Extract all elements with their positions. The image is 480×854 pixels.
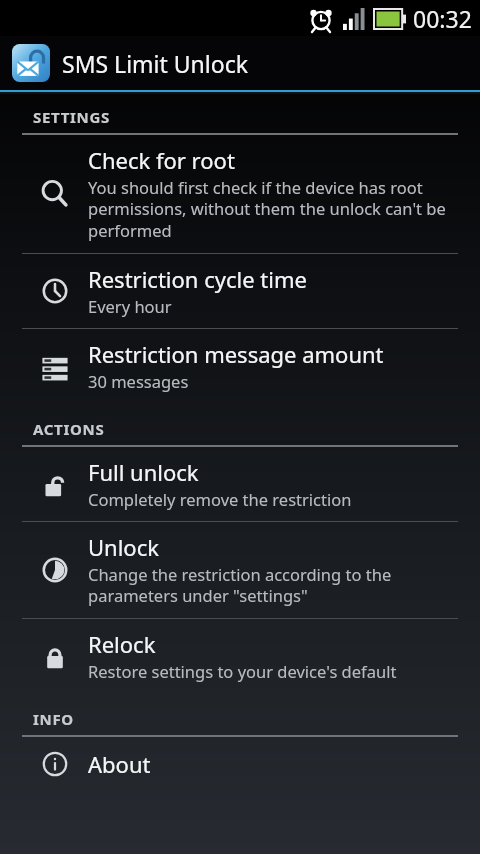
button[interactable]: SMS Limit Unlock: [0, 36, 480, 90]
staticText: SMS Limit Unlock: [62, 48, 249, 79]
button[interactable]: Relock: [0, 619, 480, 693]
staticText: INFO: [33, 709, 74, 729]
staticText: SETTINGS: [33, 107, 111, 127]
staticText: 00:32: [413, 3, 472, 34]
staticText: Restriction message amount: [88, 339, 384, 369]
button[interactable]: Check for root: [0, 135, 480, 253]
button[interactable]: Restriction cycle time: [0, 254, 480, 328]
staticText: 30 messages: [88, 370, 189, 392]
button[interactable]: About: [0, 737, 480, 792]
button[interactable]: Full unlock: [0, 447, 480, 521]
staticText: Unlock: [88, 532, 159, 562]
staticText: Completely remove the restriction: [88, 488, 352, 510]
button[interactable]: Restriction message amount: [0, 329, 480, 403]
staticText: Restriction cycle time: [88, 264, 307, 294]
staticText: About: [88, 749, 151, 779]
button[interactable]: Unlock: [0, 522, 480, 618]
staticText: Relock: [88, 629, 156, 659]
staticText: You should first check if the device has…: [88, 176, 462, 242]
staticText: Change the restriction according to the …: [88, 563, 462, 607]
staticText: ACTIONS: [33, 419, 105, 439]
staticText: Check for root: [88, 145, 235, 175]
staticText: Every hour: [88, 295, 172, 317]
staticText: Restore settings to your device's defaul…: [88, 660, 397, 682]
staticText: Full unlock: [88, 457, 199, 487]
